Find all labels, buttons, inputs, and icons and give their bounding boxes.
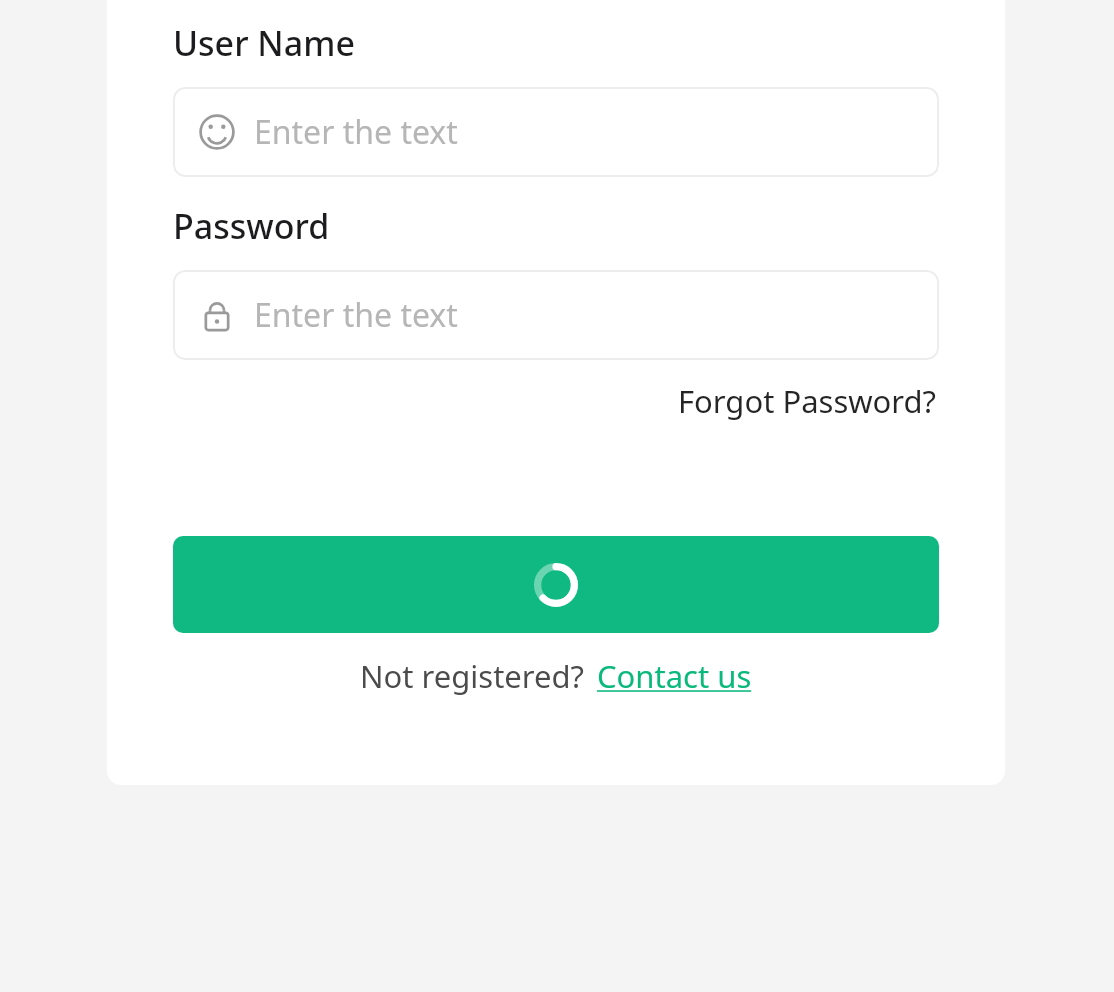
staticText: Enter the text xyxy=(254,293,458,337)
button[interactable]: Sign in, loading xyxy=(173,536,939,633)
button[interactable]: Contact us xyxy=(597,655,752,697)
button[interactable]: Forgot Password? xyxy=(676,376,939,426)
staticText: Contact us xyxy=(597,655,752,697)
staticText: Not registered? xyxy=(360,655,585,697)
button[interactable]: Enter the text xyxy=(173,87,939,177)
staticText: Forgot Password? xyxy=(678,380,937,422)
button[interactable]: Enter the text xyxy=(173,270,939,360)
staticText: User Name xyxy=(173,20,355,66)
staticText: Enter the text xyxy=(254,110,458,154)
staticText: Password xyxy=(173,203,330,249)
